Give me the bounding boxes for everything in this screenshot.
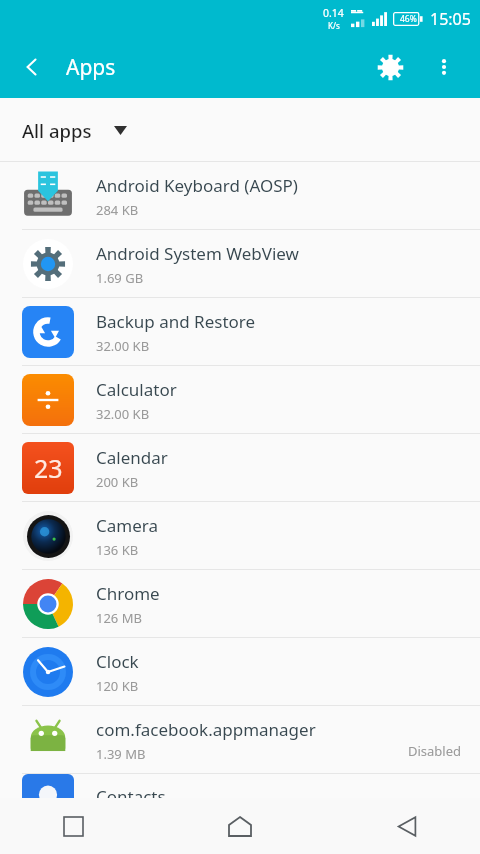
staticText: 32.00 KB bbox=[96, 337, 150, 355]
staticText: 15:05 bbox=[430, 8, 471, 30]
button[interactable]: Settings bbox=[366, 43, 414, 91]
staticText: Apps bbox=[66, 53, 116, 82]
staticText: Calculator bbox=[96, 378, 177, 401]
staticText: 1.39 MB bbox=[96, 745, 146, 763]
button[interactable]: Clock bbox=[0, 638, 480, 706]
button[interactable]: Android Keyboard (AOSP) bbox=[0, 162, 480, 230]
staticText: Clock bbox=[96, 650, 139, 673]
staticText: Disabled bbox=[408, 742, 462, 760]
button[interactable]: All apps bbox=[0, 98, 480, 162]
staticText: 23 bbox=[34, 451, 63, 485]
button[interactable]: Camera bbox=[0, 502, 480, 570]
button[interactable]: Backup and Restore bbox=[0, 298, 480, 366]
button[interactable]: 23 bbox=[0, 434, 480, 502]
staticText: 0.14 bbox=[323, 6, 344, 20]
staticText: com.facebook.appmanager bbox=[96, 718, 316, 741]
staticText: Contacts bbox=[96, 785, 166, 808]
button[interactable]: Home bbox=[213, 799, 267, 853]
button[interactable]: Calculator bbox=[0, 366, 480, 434]
button[interactable]: com.facebook.appmanager bbox=[0, 706, 480, 774]
staticText: Chrome bbox=[96, 582, 160, 605]
button[interactable]: More options bbox=[422, 45, 466, 89]
staticText: 126 MB bbox=[96, 609, 142, 627]
button[interactable]: Contacts bbox=[0, 774, 480, 818]
staticText: K/s bbox=[328, 20, 340, 31]
button[interactable]: Chrome bbox=[0, 570, 480, 638]
staticText: Camera bbox=[96, 514, 158, 537]
staticText: Calendar bbox=[96, 446, 168, 469]
staticText: 46% bbox=[400, 13, 417, 25]
staticText: 32.00 KB bbox=[96, 405, 150, 423]
button[interactable]: Android System WebView bbox=[0, 230, 480, 298]
button[interactable]: Back bbox=[8, 43, 56, 91]
staticText: 1.69 GB bbox=[96, 269, 144, 287]
staticText: Backup and Restore bbox=[96, 310, 256, 333]
staticText: All apps bbox=[22, 118, 92, 143]
staticText: 136 KB bbox=[96, 541, 139, 559]
staticText: 284 KB bbox=[96, 201, 139, 219]
button[interactable]: Back bbox=[380, 799, 434, 853]
staticText: Android Keyboard (AOSP) bbox=[96, 174, 298, 197]
staticText: Android System WebView bbox=[96, 242, 299, 265]
button[interactable]: Recent apps bbox=[46, 799, 100, 853]
staticText: 120 KB bbox=[96, 677, 139, 695]
staticText: 200 KB bbox=[96, 473, 139, 491]
